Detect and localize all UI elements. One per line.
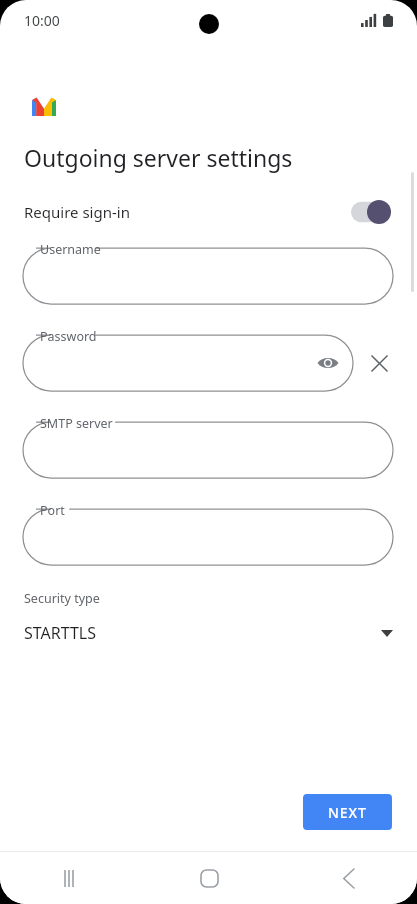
button[interactable]: SMTP server [23,422,393,478]
staticText: Password [40,328,97,345]
staticText: STARTTLS [24,622,97,644]
button[interactable]: Require sign-in [0,193,417,231]
button[interactable]: Show password [315,350,341,376]
staticText: Username [40,241,101,258]
staticText: SMTP server [40,415,113,432]
other: Gmail [32,97,56,116]
button[interactable]: Password [23,335,353,391]
button[interactable]: NEXT [303,794,392,830]
button[interactable]: Home [183,852,235,904]
button[interactable]: Port [23,509,393,565]
staticText: Require sign-in [24,202,130,222]
button[interactable]: Clear password [365,349,393,377]
button[interactable]: Security type [0,590,417,644]
staticText: Outgoing server settings [24,142,293,173]
button[interactable]: Recent apps [44,852,96,904]
staticText: Security type [24,590,100,607]
staticText: 10:00 [24,11,60,30]
button[interactable]: Require sign-in toggle [351,200,391,224]
staticText: NEXT [328,803,367,822]
button[interactable]: Username [23,248,393,304]
button[interactable]: Back [322,852,374,904]
staticText: Port [40,502,65,519]
